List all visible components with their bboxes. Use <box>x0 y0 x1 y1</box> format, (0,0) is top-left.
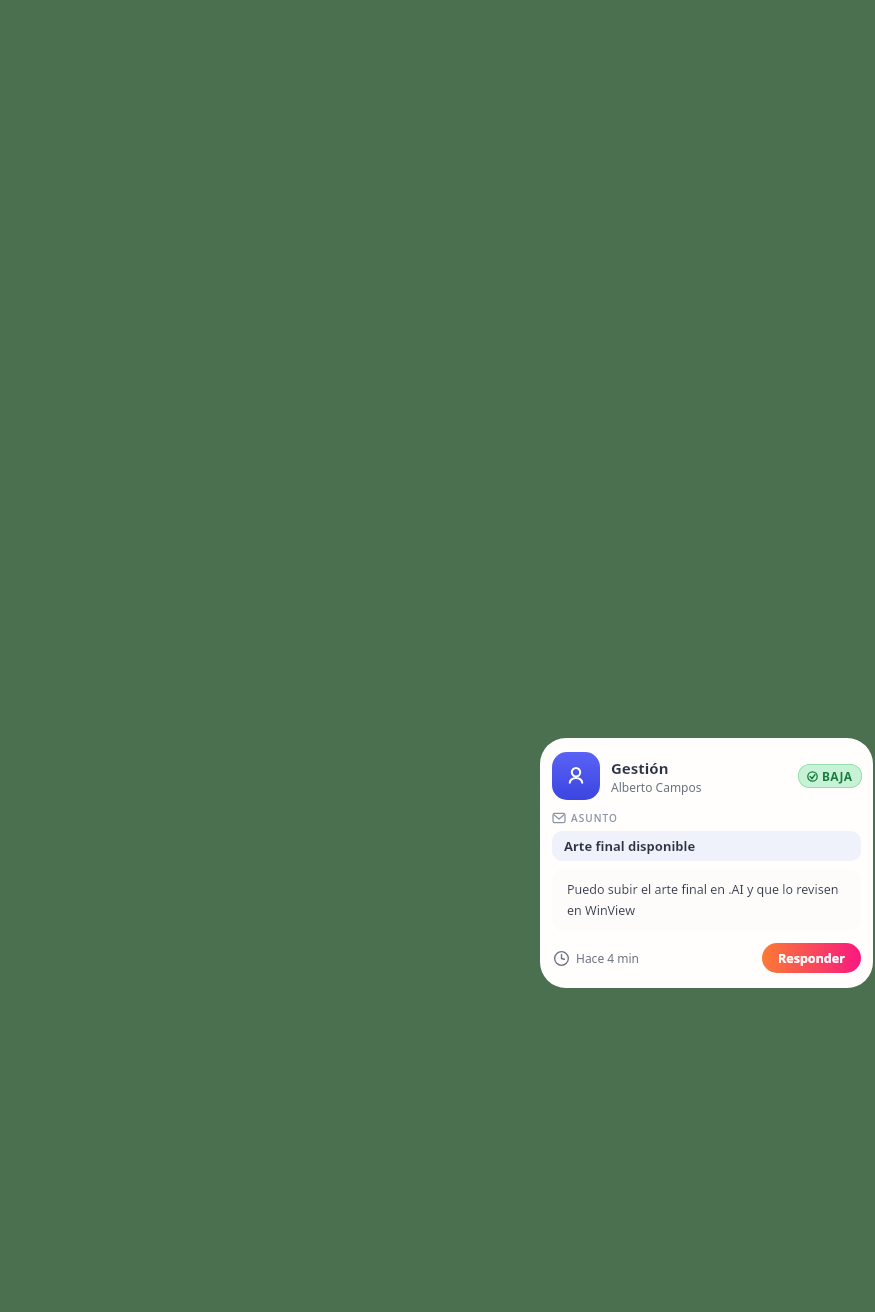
staticText: Hace 4 min <box>576 950 639 966</box>
button[interactable]: Arte final disponible <box>552 831 861 861</box>
staticText: Arte final disponible <box>564 837 696 855</box>
button[interactable]: Avatar de Gestión <box>540 738 873 988</box>
staticText: Responder <box>778 950 845 967</box>
staticText: Gestión <box>611 758 669 778</box>
staticText: BAJA <box>822 768 853 784</box>
staticText: ASUNTO <box>571 811 619 825</box>
staticText: Puedo subir el arte final en .AI y que l… <box>567 881 846 919</box>
button[interactable]: BAJA <box>798 764 862 788</box>
staticText: Alberto Campos <box>611 779 702 795</box>
button[interactable]: Avatar de Gestión <box>552 752 600 800</box>
button[interactable]: Responder <box>762 943 861 973</box>
